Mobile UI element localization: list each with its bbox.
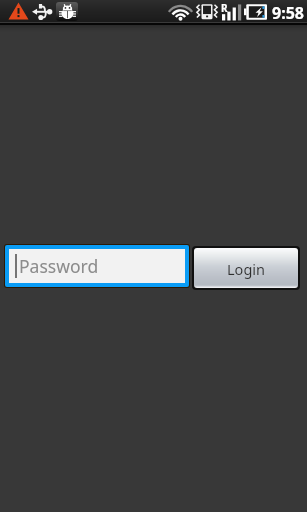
staticText: R	[221, 1, 228, 15]
button[interactable]: Password	[4, 244, 190, 288]
button[interactable]: Login	[194, 248, 298, 288]
staticText: Password	[19, 254, 99, 278]
staticText: 9:58	[272, 2, 304, 24]
staticText: Login	[227, 259, 265, 279]
